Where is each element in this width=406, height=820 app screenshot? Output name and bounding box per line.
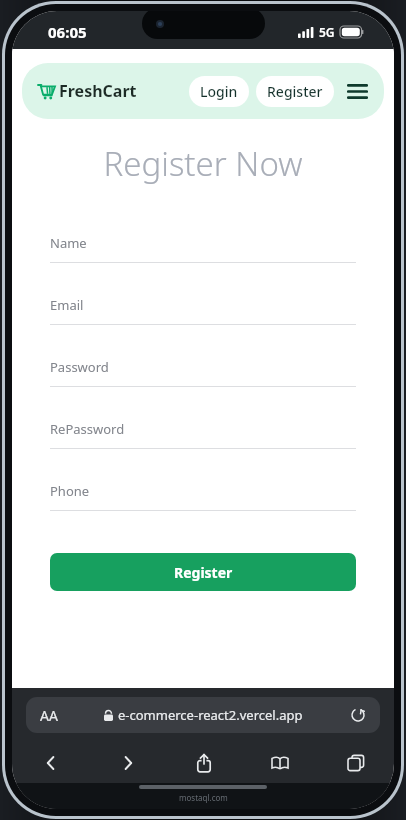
staticText: RePassword xyxy=(50,420,125,438)
staticText: e-commerce-react2.vercel.app xyxy=(118,706,303,724)
button[interactable]: Tabs xyxy=(318,743,394,783)
staticText: Phone xyxy=(50,482,90,500)
button[interactable]: FreshCart xyxy=(36,80,139,102)
staticText: Register Now xyxy=(12,141,394,186)
button[interactable]: Menu xyxy=(344,78,370,104)
staticText: Password xyxy=(50,358,109,376)
button[interactable]: Name xyxy=(50,234,356,296)
staticText: Email xyxy=(50,296,84,314)
button[interactable]: Bookmarks xyxy=(242,743,318,783)
button[interactable]: Password xyxy=(50,358,356,420)
button[interactable]: Login xyxy=(189,76,249,107)
staticText: 5G xyxy=(319,24,335,40)
staticText: FreshCart xyxy=(59,80,137,102)
button[interactable]: AA xyxy=(26,697,380,733)
staticText: Login xyxy=(200,82,238,101)
button[interactable]: Forward xyxy=(89,743,166,783)
button[interactable]: RePassword xyxy=(50,420,356,482)
staticText: Name xyxy=(50,234,87,252)
button[interactable]: Share xyxy=(166,743,242,783)
button[interactable]: Email xyxy=(50,296,356,358)
staticText: Register xyxy=(267,82,323,101)
staticText: mostaql.com xyxy=(179,792,228,803)
staticText: AA xyxy=(40,706,58,725)
staticText: 06:05 xyxy=(48,22,87,42)
button[interactable]: Back xyxy=(12,743,89,783)
button[interactable]: Reload xyxy=(349,706,367,724)
staticText: Register xyxy=(174,563,233,582)
button[interactable]: Register xyxy=(256,76,334,107)
button[interactable]: Phone xyxy=(50,482,356,544)
button[interactable]: Register xyxy=(50,553,356,591)
